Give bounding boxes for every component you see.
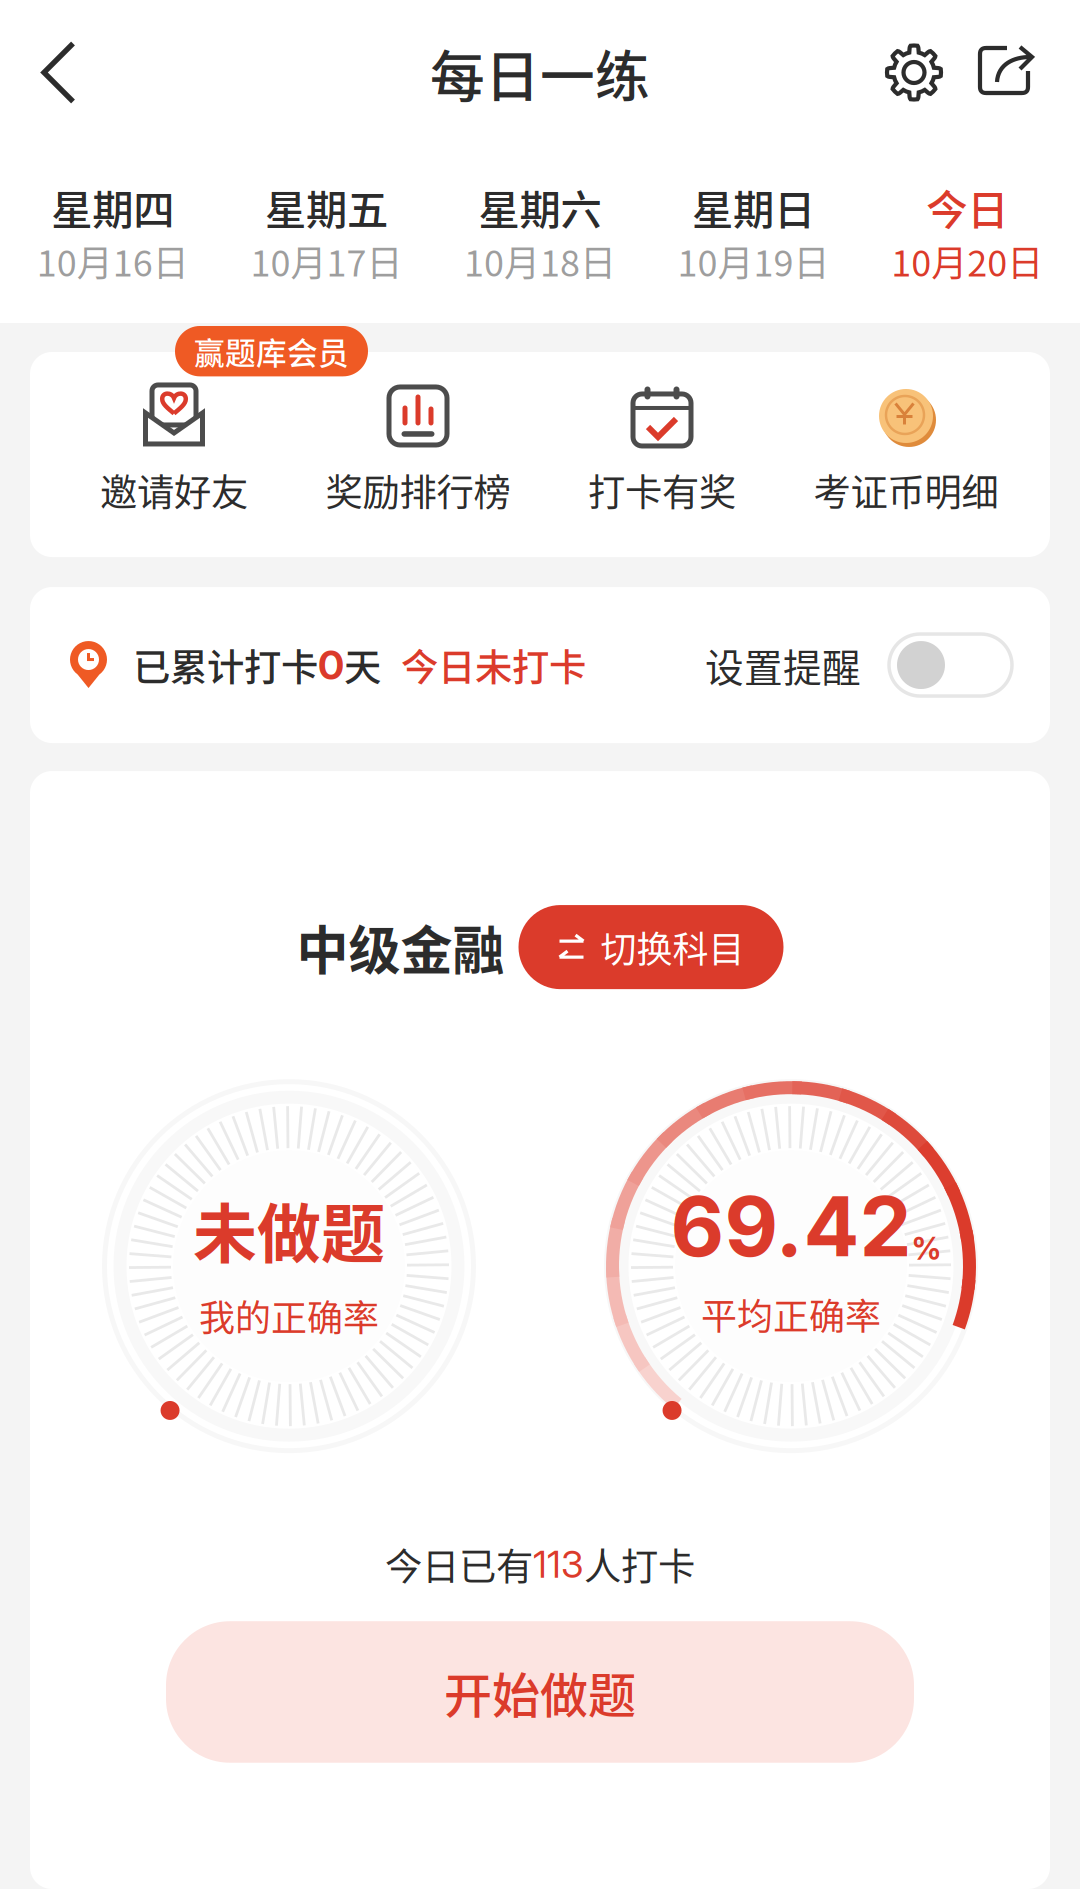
button[interactable]: 星期四 [6, 177, 220, 287]
staticText: 69.42 [670, 1176, 911, 1276]
button[interactable]: 考证币明细 [784, 385, 1028, 517]
button[interactable]: 打卡有奖 [540, 385, 784, 517]
staticText: 星期四 [51, 177, 174, 237]
button[interactable]: 赢题库会员 [175, 326, 368, 376]
staticText: 邀请好友 [100, 463, 248, 517]
button[interactable]: 设置提醒 [889, 634, 1012, 696]
button[interactable]: 奖励排行榜 [296, 385, 540, 517]
staticText: 今日已有 [385, 1537, 533, 1591]
button[interactable]: 星期日 [647, 177, 860, 287]
staticText: 切换科目 [600, 921, 744, 973]
button[interactable]: 星期六 [433, 177, 647, 287]
staticText: 设置提醒 [705, 637, 861, 693]
button[interactable]: 分享 [965, 35, 1049, 110]
staticText: 10月16日 [37, 235, 189, 287]
staticText: 天 [344, 638, 381, 692]
staticText: 今日未打卡 [401, 638, 586, 692]
staticText: 星期六 [478, 177, 601, 237]
staticText: 0 [318, 641, 344, 689]
staticText: 人打卡 [584, 1537, 695, 1591]
staticText: 打卡有奖 [588, 463, 736, 517]
staticText: 开始做题 [444, 1657, 636, 1727]
staticText: 10月20日 [891, 235, 1043, 287]
button[interactable]: 开始做题 [166, 1621, 914, 1763]
staticText: 考证币明细 [813, 463, 998, 517]
staticText: 中级金融 [296, 909, 504, 985]
staticText: 赢题库会员 [194, 329, 349, 373]
staticText: 星期日 [692, 177, 815, 237]
button[interactable]: 今日 [860, 177, 1074, 287]
button[interactable]: 星期五 [220, 177, 433, 287]
staticText: 未做题 [193, 1183, 385, 1275]
staticText: 每日一练 [430, 33, 650, 112]
staticText: 10月19日 [678, 235, 830, 287]
staticText: 奖励排行榜 [325, 463, 510, 517]
staticText: 10月17日 [250, 235, 402, 287]
button[interactable]: 返回 [0, 30, 97, 114]
button[interactable]: 切换科目 [518, 905, 783, 989]
staticText: 今日 [926, 177, 1008, 237]
button[interactable]: 设置 [863, 31, 965, 113]
staticText: 已累计打卡 [133, 638, 318, 692]
button[interactable]: 邀请好友 [52, 385, 296, 517]
staticText: 平均正确率 [701, 1288, 881, 1340]
staticText: 星期五 [265, 177, 388, 237]
staticText: % [911, 1230, 941, 1267]
staticText: 10月18日 [464, 235, 616, 287]
staticText: 113 [533, 1542, 584, 1587]
staticText: 我的正确率 [199, 1289, 379, 1341]
